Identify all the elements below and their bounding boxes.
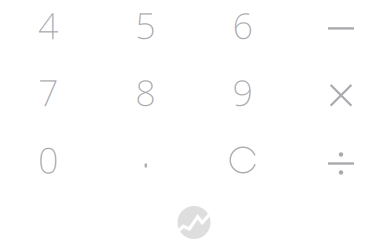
button[interactable]: Multiply [292, 59, 390, 126]
button[interactable]: Divide [292, 126, 390, 193]
staticText: 5 [135, 1, 156, 49]
button[interactable]: Chart [172, 200, 216, 244]
button[interactable]: 8 [97, 59, 195, 126]
button[interactable]: 9 [194, 59, 292, 126]
staticText: 9 [232, 68, 253, 116]
button[interactable]: 7 [0, 59, 97, 126]
staticText: 6 [232, 1, 253, 49]
button[interactable]: 4 [0, 0, 97, 59]
button[interactable]: Minus [292, 0, 390, 59]
button[interactable]: 6 [194, 0, 292, 59]
staticText: 8 [135, 68, 156, 116]
staticText: 7 [38, 68, 59, 116]
button[interactable]: 0 [0, 126, 97, 193]
staticText: 4 [38, 1, 59, 49]
button[interactable]: Clear [194, 126, 292, 193]
staticText: 0 [38, 136, 59, 184]
button[interactable]: 5 [97, 0, 195, 59]
